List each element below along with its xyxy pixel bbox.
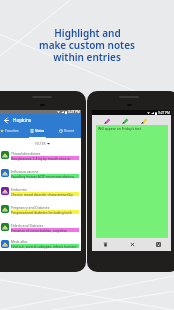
staticText: within entries — [53, 50, 121, 64]
button[interactable]: Endocrine — [0, 182, 81, 200]
button[interactable]: Thiazolidinediones — [0, 146, 81, 164]
button[interactable]: Notes — [23, 126, 52, 138]
button[interactable]: Back — [4, 118, 9, 123]
staticText: Equalling history ACIP recommendations, … — [11, 174, 79, 178]
button[interactable]: FILTER — [35, 141, 50, 146]
button[interactable]: Favorites — [0, 126, 23, 138]
staticText: Rosiglitazone 3-4 hg by mouth once or tw… — [11, 156, 79, 160]
button[interactable]: Close — [119, 238, 145, 251]
button[interactable]: Green highlighter — [121, 117, 129, 124]
staticText: Highlight and — [54, 26, 121, 40]
staticText: Pregnancy and Diabetes — [11, 205, 50, 209]
button[interactable]: Recent — [52, 126, 81, 138]
staticText: Hopkins — [13, 117, 32, 123]
staticText: Pregestational diabetes (including both … — [11, 210, 79, 214]
staticText: Notes — [35, 129, 45, 133]
button[interactable]: Delete — [92, 238, 119, 251]
staticText: Favorites — [5, 129, 19, 133]
button[interactable]: Influenza vaccine — [0, 164, 81, 182]
staticText: 3:27 PM — [68, 110, 80, 114]
staticText: Presence of comorbidities, cognitive dys… — [11, 228, 79, 232]
staticText: FILTER — [35, 141, 46, 146]
button[interactable]: Pregnancy and Diabetes — [0, 200, 81, 218]
button[interactable]: Pink highlighter — [103, 117, 111, 124]
button[interactable]: Meds alloc — [0, 236, 81, 251]
button[interactable]: Yellow highlighter — [140, 117, 148, 124]
staticText: Chronic mood disorder characterised by m… — [11, 192, 79, 196]
staticText: Elderly and Diabetes — [11, 223, 44, 227]
button[interactable]: Elderly and Diabetes — [0, 218, 81, 236]
staticText: Influenza vaccine — [11, 169, 39, 173]
staticText: Meds alloc — [11, 239, 28, 243]
button[interactable]: Save — [145, 238, 171, 251]
staticText: Recent — [64, 129, 75, 133]
staticText: Will appear on Friday's test — [98, 126, 141, 131]
staticText: Find out, several subtypes: infects huma… — [11, 244, 79, 248]
staticText: make custom notes — [39, 38, 135, 52]
staticText: Endocrine — [11, 187, 27, 191]
staticText: Thiazolidinediones — [11, 151, 41, 155]
staticText: 3:27 PM — [158, 111, 170, 115]
